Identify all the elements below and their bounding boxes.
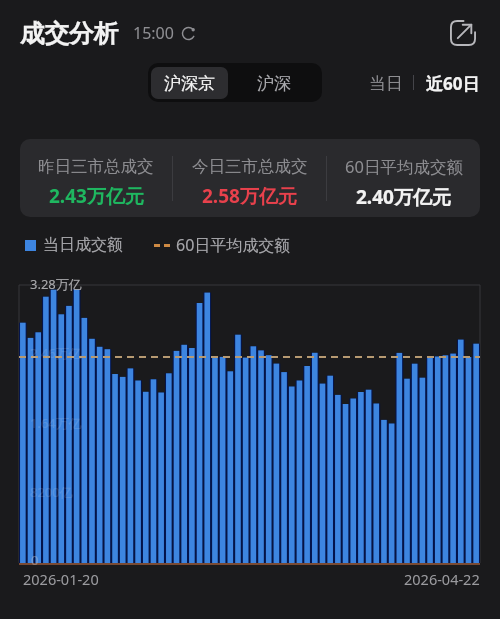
staticText: 15:00 [133,22,174,44]
staticText: 0 [31,551,39,569]
staticText: 2.46万亿 [30,344,82,362]
button[interactable]: 沪深 [228,67,319,99]
staticText: 今日三市总成交 [192,156,308,177]
staticText: 当日成交额 [43,235,123,255]
staticText: 8200亿 [30,483,73,501]
staticText: 当日 [369,73,403,94]
button[interactable]: 60日平均成交额 [327,151,480,206]
staticText: 2.58万亿元 [202,183,297,209]
staticText: 1.64万亿 [30,414,82,432]
staticText: 3.28万亿 [30,275,82,293]
staticText: 2.40万亿元 [356,184,451,210]
staticText: 成交分析 [20,18,118,49]
staticText: 沪深京 [164,73,215,94]
staticText: 沪深 [257,73,291,94]
button[interactable]: 沪深京 [151,67,228,99]
staticText: 2026-01-20 [23,569,99,589]
staticText: 2026-04-22 [404,569,480,589]
button[interactable]: Open in new window [446,16,480,50]
button[interactable]: 当日 [359,67,413,99]
button[interactable]: 昨日三市总成交 [20,152,172,205]
staticText: 60日平均成交额 [176,234,291,256]
staticText: 昨日三市总成交 [38,156,154,177]
button[interactable]: Refresh [178,23,198,43]
button[interactable]: 近60日 [414,67,492,99]
staticText: 2.43万亿元 [49,183,144,209]
staticText: 60日平均成交额 [345,155,463,178]
button[interactable]: 今日三市总成交 [173,152,326,205]
staticText: 近60日 [426,72,480,95]
